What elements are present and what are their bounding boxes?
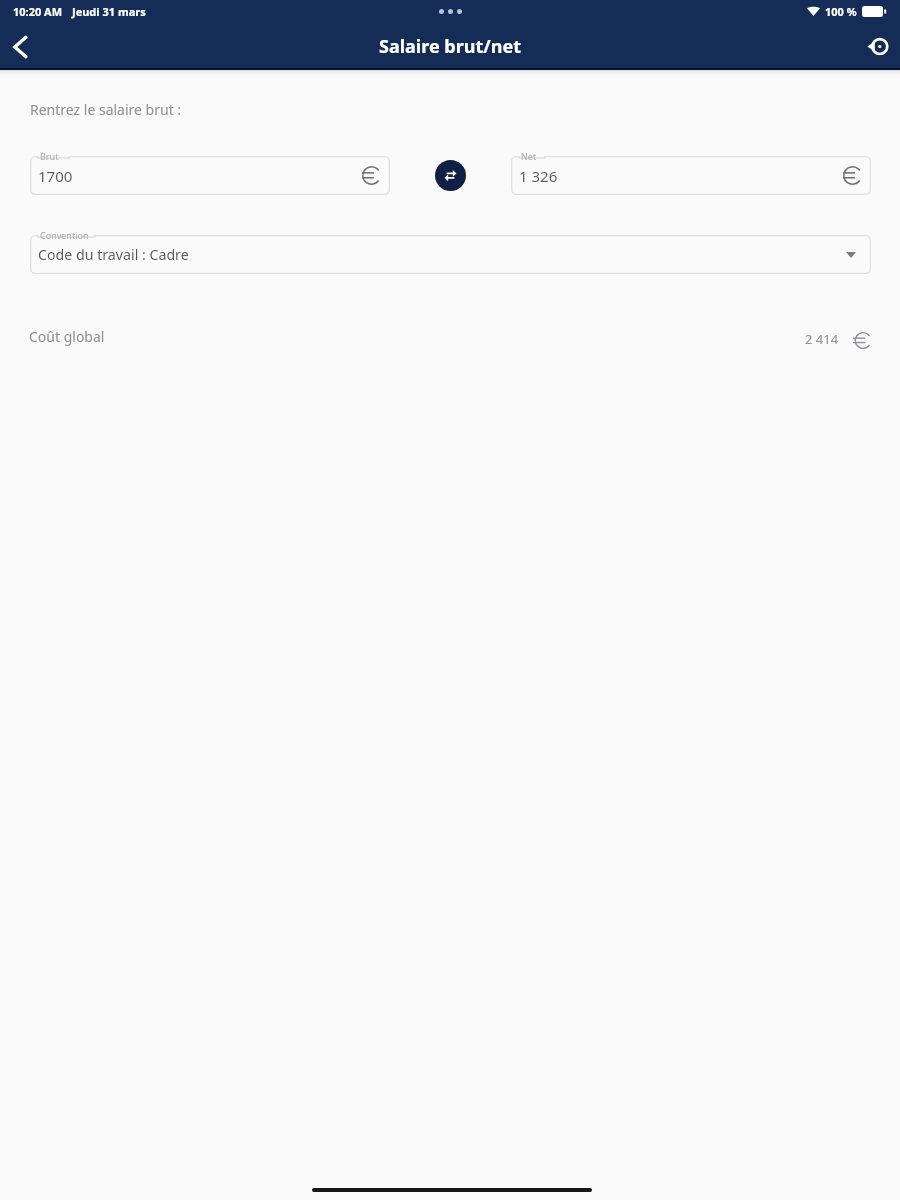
button[interactable]: Historique — [855, 23, 900, 70]
staticText: Coût global — [29, 327, 105, 346]
staticText: Net — [521, 150, 537, 162]
staticText: 10:20 AM — [13, 4, 63, 19]
staticText: Jeudi 31 mars — [72, 4, 146, 19]
button[interactable]: Retour — [0, 23, 40, 70]
staticText: 2 414 — [805, 330, 839, 348]
staticText: 100 % — [825, 4, 857, 19]
staticText: Convention — [40, 229, 89, 241]
button[interactable]: Brut : 1700 euros — [30, 156, 390, 195]
staticText: Brut — [40, 150, 59, 162]
button[interactable]: Convention — [30, 235, 871, 274]
staticText: 1700 — [38, 166, 73, 186]
button[interactable]: Net : 1 326 euros — [511, 156, 871, 195]
staticText: Salaire brut/net — [379, 34, 522, 59]
button[interactable]: Inverser brut et net — [435, 160, 466, 191]
staticText: Rentrez le salaire brut : — [30, 100, 182, 119]
staticText: Code du travail : Cadre — [38, 245, 189, 264]
staticText: 1 326 — [519, 166, 558, 186]
